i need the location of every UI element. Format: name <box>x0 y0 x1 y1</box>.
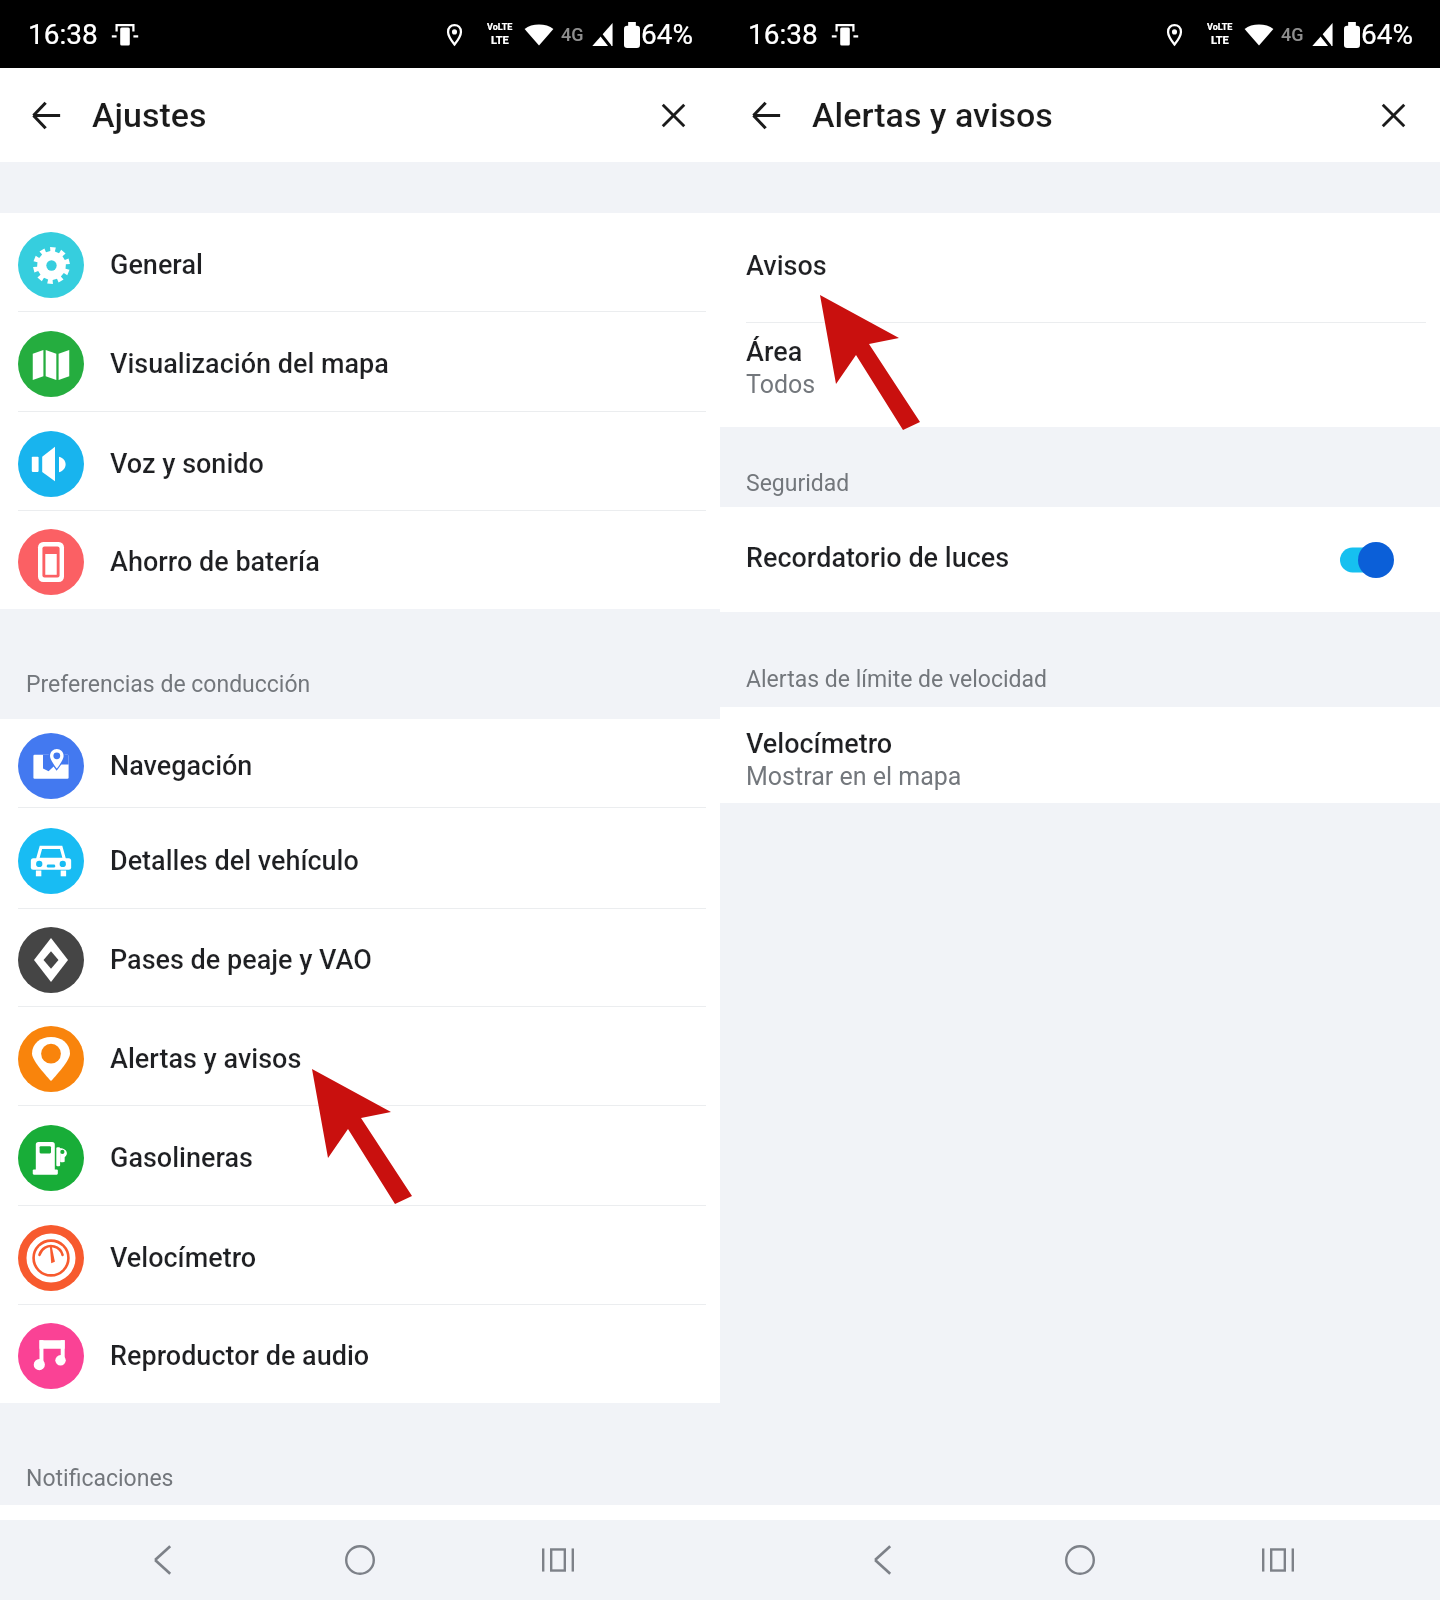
staticText: Ahorro de batería <box>110 546 320 578</box>
button[interactable]: Gasolineras <box>0 1106 720 1206</box>
button[interactable]: Pases de peaje y VAO <box>0 909 720 1007</box>
staticText: Visualización del mapa <box>110 348 389 380</box>
staticText: VoLTE <box>487 22 513 33</box>
button[interactable]: Close <box>645 87 701 143</box>
staticText: 4G <box>561 24 584 45</box>
button[interactable]: General <box>0 213 720 312</box>
staticText: 4G <box>1281 24 1304 45</box>
button[interactable]: Ahorro de batería <box>0 511 720 609</box>
staticText: Área <box>746 336 803 368</box>
staticText: Navegación <box>110 750 253 782</box>
button[interactable]: Navegación <box>0 719 720 808</box>
staticText: Alertas y avisos <box>812 95 1053 135</box>
staticText: Reproductor de audio <box>110 1340 370 1372</box>
staticText: Recordatorio de luces <box>746 542 1010 574</box>
staticText: 64% <box>641 18 693 51</box>
button[interactable]: Back <box>18 87 74 143</box>
staticText: Alertas de límite de velocidad <box>746 666 1047 693</box>
button[interactable]: Detalles del vehículo <box>0 808 720 909</box>
button[interactable]: Recent apps <box>518 1520 598 1600</box>
staticText: General <box>110 249 203 281</box>
staticText: Velocímetro <box>746 728 893 760</box>
staticText: Notificaciones <box>26 1465 174 1492</box>
staticText: Detalles del vehículo <box>110 845 359 877</box>
button[interactable]: Back <box>843 1520 923 1600</box>
button[interactable]: Back <box>738 87 794 143</box>
staticText: Preferencias de conducción <box>26 671 311 698</box>
button[interactable]: Toggle Recordatorio de luces <box>1340 542 1394 578</box>
button[interactable]: Back <box>123 1520 203 1600</box>
staticText: Mostrar en el mapa <box>746 762 962 791</box>
button[interactable]: Home <box>320 1520 400 1600</box>
staticText: 64% <box>1361 18 1413 51</box>
staticText: Seguridad <box>746 470 850 497</box>
staticText: Pases de peaje y VAO <box>110 944 372 976</box>
button[interactable]: Alertas y avisos <box>0 1007 720 1106</box>
button[interactable]: Visualización del mapa <box>0 312 720 412</box>
staticText: Avisos <box>746 250 827 282</box>
staticText: LTE <box>1211 34 1229 47</box>
staticText: 16:38 <box>748 18 818 51</box>
staticText: Todos <box>746 370 816 399</box>
staticText: Alertas y avisos <box>110 1043 302 1075</box>
staticText: Voz y sonido <box>110 448 264 480</box>
staticText: Ajustes <box>92 95 207 135</box>
staticText: 16:38 <box>28 18 98 51</box>
button[interactable]: Velocímetro <box>0 1206 720 1305</box>
button[interactable]: Avisos <box>720 213 1440 323</box>
staticText: VoLTE <box>1207 22 1233 33</box>
button[interactable]: Reproductor de audio <box>0 1305 720 1403</box>
button[interactable]: Voz y sonido <box>0 412 720 511</box>
button[interactable]: Recent apps <box>1238 1520 1318 1600</box>
button[interactable]: Close <box>1365 87 1421 143</box>
staticText: LTE <box>491 34 509 47</box>
staticText: Gasolineras <box>110 1142 253 1174</box>
button[interactable]: Área <box>720 323 1440 427</box>
button[interactable]: Home <box>1040 1520 1120 1600</box>
button[interactable]: Recordatorio de luces <box>720 507 1440 612</box>
button[interactable]: Velocímetro <box>720 707 1440 803</box>
staticText: Velocímetro <box>110 1242 257 1274</box>
